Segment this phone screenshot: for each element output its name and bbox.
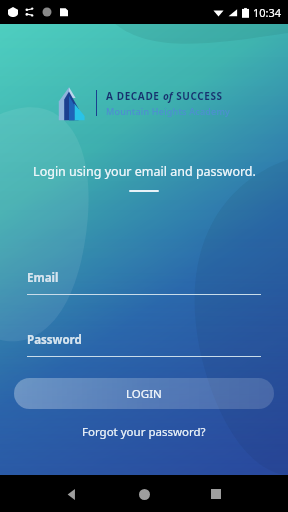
staticText: LOGIN [126, 386, 162, 402]
staticText: A DECADE [106, 89, 163, 103]
button[interactable]: Back [54, 476, 90, 512]
button[interactable]: Forgot your password? [72, 421, 216, 443]
staticText: SUCCESS [173, 89, 223, 103]
staticText: of [163, 89, 173, 103]
staticText: Email [27, 270, 59, 286]
staticText: Forgot your password? [82, 424, 206, 440]
staticText: 10:34 [253, 5, 282, 20]
staticText: Login using your email and password. [33, 163, 256, 180]
button[interactable]: Home [126, 476, 162, 512]
staticText: Password [27, 332, 82, 348]
staticText: Mountain Heights Academy [106, 105, 231, 117]
button[interactable]: Recent apps [198, 476, 234, 512]
button[interactable]: Email [27, 270, 261, 295]
button[interactable]: LOGIN [14, 378, 274, 409]
button[interactable]: Password [27, 332, 261, 357]
